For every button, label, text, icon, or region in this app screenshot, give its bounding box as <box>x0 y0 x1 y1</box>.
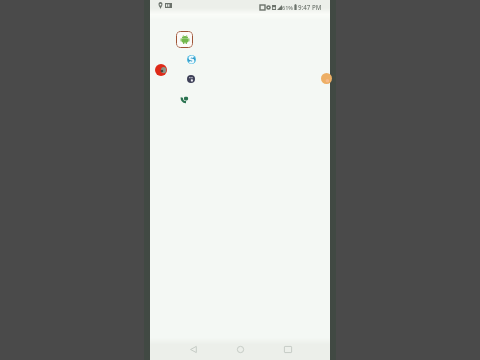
button[interactable]: Back <box>183 339 203 359</box>
button[interactable]: Home <box>230 339 250 359</box>
button[interactable]: Messenger <box>187 75 195 83</box>
staticText: 61% <box>282 4 293 11</box>
button[interactable]: Recent apps <box>278 339 298 359</box>
button[interactable]: Phone dialer <box>180 95 189 104</box>
button[interactable]: Floating bubble <box>321 73 332 84</box>
staticText: 9:47 PM <box>298 3 322 11</box>
button[interactable]: Android app shortcut <box>176 31 193 48</box>
button[interactable]: Opera browser <box>155 64 167 76</box>
button[interactable]: Skype <box>187 55 196 64</box>
